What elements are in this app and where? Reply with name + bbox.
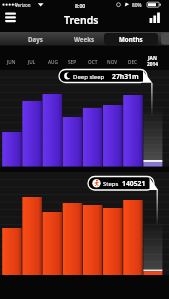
staticText: Verizon	[15, 2, 31, 8]
button[interactable]	[59, 70, 147, 83]
staticText: 8:00	[75, 2, 86, 9]
staticText: Weeks	[74, 35, 95, 43]
staticText: Trends	[64, 13, 99, 27]
staticText: 80%	[132, 2, 142, 9]
staticText: JAN	[148, 55, 157, 62]
button[interactable]: Months	[104, 32, 158, 46]
staticText: Steps	[103, 180, 119, 188]
staticText: 27h31m	[112, 72, 139, 81]
staticText: 140521	[122, 179, 146, 188]
staticText: AUG	[48, 59, 58, 65]
staticText: Days	[28, 35, 43, 43]
button[interactable]: Days	[10, 32, 60, 46]
staticText: DEC	[128, 59, 138, 65]
button[interactable]	[0, 9, 22, 31]
staticText: Deep sleep	[73, 73, 105, 81]
staticText: SEP	[68, 59, 77, 65]
staticText: 2014	[147, 61, 158, 68]
staticText: OCT	[88, 59, 98, 65]
staticText: JUN	[7, 59, 16, 65]
staticText: Months	[119, 35, 143, 43]
staticText: JUL	[28, 59, 36, 65]
button[interactable]: Weeks	[60, 32, 109, 46]
staticText: NOV	[107, 59, 118, 65]
button[interactable]	[145, 9, 169, 31]
button[interactable]	[88, 177, 154, 191]
